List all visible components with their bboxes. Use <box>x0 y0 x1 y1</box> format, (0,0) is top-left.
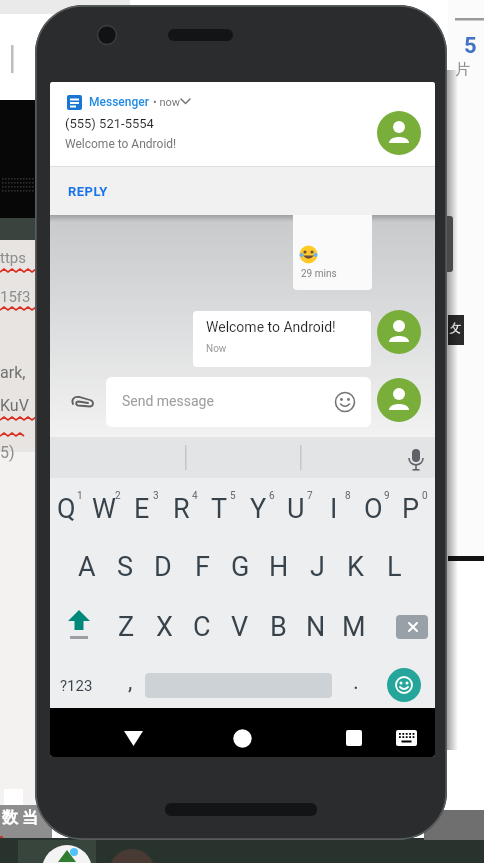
staticText: Messenger <box>89 95 149 109</box>
staticText: 5 <box>464 33 477 59</box>
staticText: 15f3 <box>0 288 31 306</box>
staticText: 8 <box>345 490 351 502</box>
button[interactable] <box>392 723 420 753</box>
staticText: 9 <box>384 490 390 502</box>
staticText: 2 <box>115 490 121 502</box>
staticText: L <box>387 551 402 583</box>
staticText: 4 <box>192 490 198 502</box>
staticText: W <box>92 493 116 525</box>
staticText: 数 当 <box>2 808 38 828</box>
staticText: K <box>347 551 364 583</box>
staticText: B <box>270 611 287 643</box>
staticText: Z <box>118 611 135 643</box>
button[interactable] <box>338 722 370 754</box>
staticText: F <box>195 551 210 583</box>
staticText: V <box>231 611 249 643</box>
button[interactable] <box>225 721 259 755</box>
staticText: Now <box>206 343 227 355</box>
staticText: R <box>173 493 190 525</box>
staticText: T <box>211 493 228 525</box>
staticText: S <box>117 551 134 583</box>
button[interactable] <box>387 668 421 702</box>
staticText: 1 <box>77 490 83 502</box>
staticText: 攵 <box>449 320 461 335</box>
button[interactable] <box>116 722 150 754</box>
staticText: , <box>128 669 133 695</box>
staticText: KuV <box>0 396 29 415</box>
staticText: ark, <box>0 363 26 382</box>
button[interactable] <box>50 478 435 708</box>
button[interactable]: REPLY <box>58 174 118 208</box>
staticText: N <box>306 611 326 643</box>
staticText: Welcome to Android! <box>65 137 177 151</box>
staticText: Y <box>250 493 267 525</box>
staticText: J <box>310 551 325 583</box>
staticText: (555) 521-5554 <box>65 116 154 131</box>
staticText: I <box>330 493 338 525</box>
staticText: 6 <box>269 490 275 502</box>
staticText: . <box>353 669 359 695</box>
staticText: M <box>342 611 366 643</box>
staticText: ?123 <box>60 677 93 695</box>
staticText: H <box>269 551 289 583</box>
staticText: P <box>402 493 420 525</box>
staticText: Welcome to Android! <box>206 319 336 335</box>
staticText: C <box>193 611 211 643</box>
staticText: Q <box>57 493 76 525</box>
staticText: 29 mins <box>301 268 337 280</box>
staticText: REPLY <box>68 184 108 199</box>
staticText: 3 <box>153 490 159 502</box>
staticText: • now <box>153 96 181 109</box>
staticText: 0 <box>422 490 428 502</box>
staticText: G <box>231 551 250 583</box>
staticText: 片 <box>455 60 470 79</box>
staticText: 5) <box>0 443 15 462</box>
staticText: X <box>156 611 173 643</box>
staticText: ttps <box>0 249 26 267</box>
staticText: Send message <box>122 393 214 409</box>
staticText: 5 <box>230 490 236 502</box>
button[interactable] <box>106 377 371 427</box>
staticText: D <box>154 551 172 583</box>
staticText: 7 <box>307 490 313 502</box>
staticText: O <box>364 493 383 525</box>
staticText: E <box>134 493 150 525</box>
staticText: U <box>287 493 305 525</box>
staticText: A <box>78 551 96 583</box>
